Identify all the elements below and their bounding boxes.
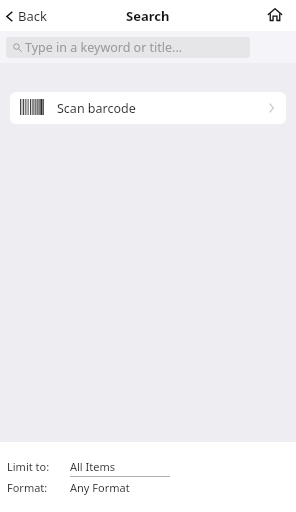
button[interactable]: Home: [264, 5, 286, 27]
staticText: Type in a keyword or title...: [25, 39, 183, 56]
staticText: Scan barcode: [57, 100, 136, 117]
staticText: Search: [126, 7, 170, 25]
button[interactable]: Format:: [0, 477, 296, 497]
button[interactable]: Back: [4, 2, 49, 30]
staticText: Any Format: [70, 480, 130, 495]
staticText: Back: [18, 7, 47, 25]
button[interactable]: Scan barcode: [10, 92, 286, 124]
staticText: Limit to:: [7, 459, 70, 474]
staticText: Format:: [7, 480, 70, 495]
staticText: All Items: [70, 459, 116, 474]
button[interactable]: Type in a keyword or title...: [6, 37, 250, 58]
button[interactable]: Limit to:: [0, 442, 296, 476]
